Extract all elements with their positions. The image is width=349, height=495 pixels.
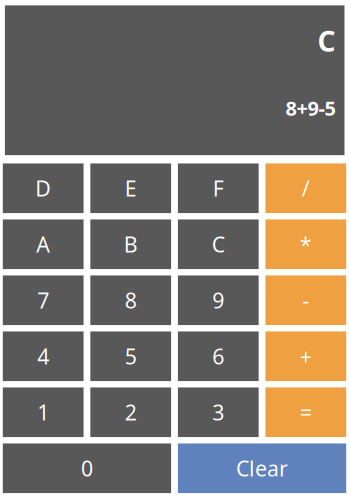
staticText: F xyxy=(213,174,224,202)
staticText: 8 xyxy=(125,286,137,314)
button[interactable]: C xyxy=(178,219,259,269)
staticText: + xyxy=(300,342,312,370)
button[interactable]: / xyxy=(265,163,346,213)
staticText: E xyxy=(125,174,137,202)
staticText: 7 xyxy=(37,286,49,314)
button[interactable]: 5 xyxy=(90,331,171,381)
staticText: C xyxy=(212,230,225,258)
staticText: D xyxy=(35,174,51,202)
button[interactable]: 0 xyxy=(3,443,171,493)
button[interactable]: 3 xyxy=(178,387,259,437)
button[interactable]: 9 xyxy=(178,275,259,325)
button[interactable]: D xyxy=(3,163,84,213)
button[interactable]: 2 xyxy=(90,387,171,437)
button[interactable]: 6 xyxy=(178,331,259,381)
button[interactable]: = xyxy=(265,387,346,437)
staticText: 6 xyxy=(212,342,224,370)
button[interactable]: A xyxy=(3,219,84,269)
button[interactable]: - xyxy=(265,275,346,325)
button[interactable]: + xyxy=(265,331,346,381)
staticText: 0 xyxy=(81,454,93,482)
button[interactable]: * xyxy=(265,219,346,269)
staticText: 2 xyxy=(125,398,137,426)
staticText: 5 xyxy=(125,342,137,370)
button[interactable]: Clear xyxy=(178,443,346,493)
button[interactable]: 8 xyxy=(90,275,171,325)
button[interactable]: E xyxy=(90,163,171,213)
staticText: Clear xyxy=(236,454,288,482)
staticText: 4 xyxy=(37,342,49,370)
staticText: 8+9-5 xyxy=(285,95,335,121)
staticText: 9 xyxy=(212,286,224,314)
staticText: C xyxy=(317,22,335,60)
button[interactable]: F xyxy=(178,163,259,213)
button[interactable]: 4 xyxy=(3,331,84,381)
staticText: 3 xyxy=(212,398,224,426)
staticText: - xyxy=(302,286,309,314)
button[interactable]: B xyxy=(90,219,171,269)
staticText: B xyxy=(124,230,138,258)
staticText: = xyxy=(300,398,312,426)
staticText: A xyxy=(36,230,50,258)
staticText: 1 xyxy=(37,398,49,426)
button[interactable]: 1 xyxy=(3,387,84,437)
staticText: * xyxy=(300,230,312,258)
staticText: / xyxy=(302,174,310,202)
button[interactable]: 7 xyxy=(3,275,84,325)
